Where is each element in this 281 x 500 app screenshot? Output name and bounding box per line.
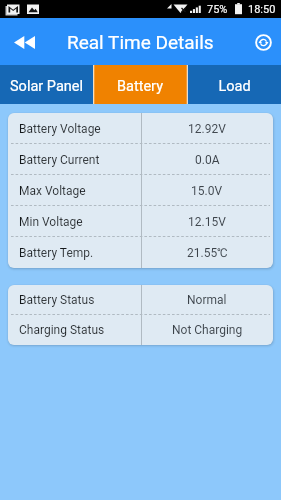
button[interactable]: Battery Status <box>8 285 273 315</box>
staticText: Not Charging <box>172 323 243 337</box>
staticText: Charging Status <box>19 323 105 337</box>
button[interactable]: Refresh <box>245 24 281 60</box>
staticText: Battery Status <box>19 293 95 307</box>
staticText: 0.0A <box>195 153 220 167</box>
staticText: 12.92V <box>188 122 226 136</box>
staticText: 18:50 <box>248 3 276 16</box>
staticText: Real Time Details <box>67 31 214 53</box>
staticText: Battery Current <box>19 153 100 167</box>
button[interactable]: Min Voltage <box>8 206 273 237</box>
button[interactable]: Battery <box>93 65 187 104</box>
button[interactable]: Battery Current <box>8 144 273 175</box>
button[interactable]: Charging Status <box>8 315 273 345</box>
staticText: Max Voltage <box>19 184 86 198</box>
staticText: 21.55℃ <box>187 246 228 260</box>
button[interactable]: Max Voltage <box>8 175 273 206</box>
staticText: Battery Temp. <box>19 246 94 260</box>
staticText: Battery Voltage <box>19 122 101 136</box>
button[interactable]: Load <box>187 65 281 104</box>
button[interactable]: Solar Panel <box>0 65 93 104</box>
staticText: 15.0V <box>191 184 223 198</box>
button[interactable]: Battery Voltage <box>8 113 273 144</box>
staticText: Battery <box>117 78 163 95</box>
staticText: 12.15V <box>188 215 226 229</box>
staticText: Solar Panel <box>10 78 83 95</box>
button[interactable]: Back <box>2 20 46 64</box>
button[interactable]: Battery Temp. <box>8 237 273 268</box>
staticText: 75% <box>207 3 228 16</box>
staticText: Min Voltage <box>19 215 83 229</box>
staticText: Load <box>218 78 251 95</box>
staticText: Normal <box>187 293 227 307</box>
